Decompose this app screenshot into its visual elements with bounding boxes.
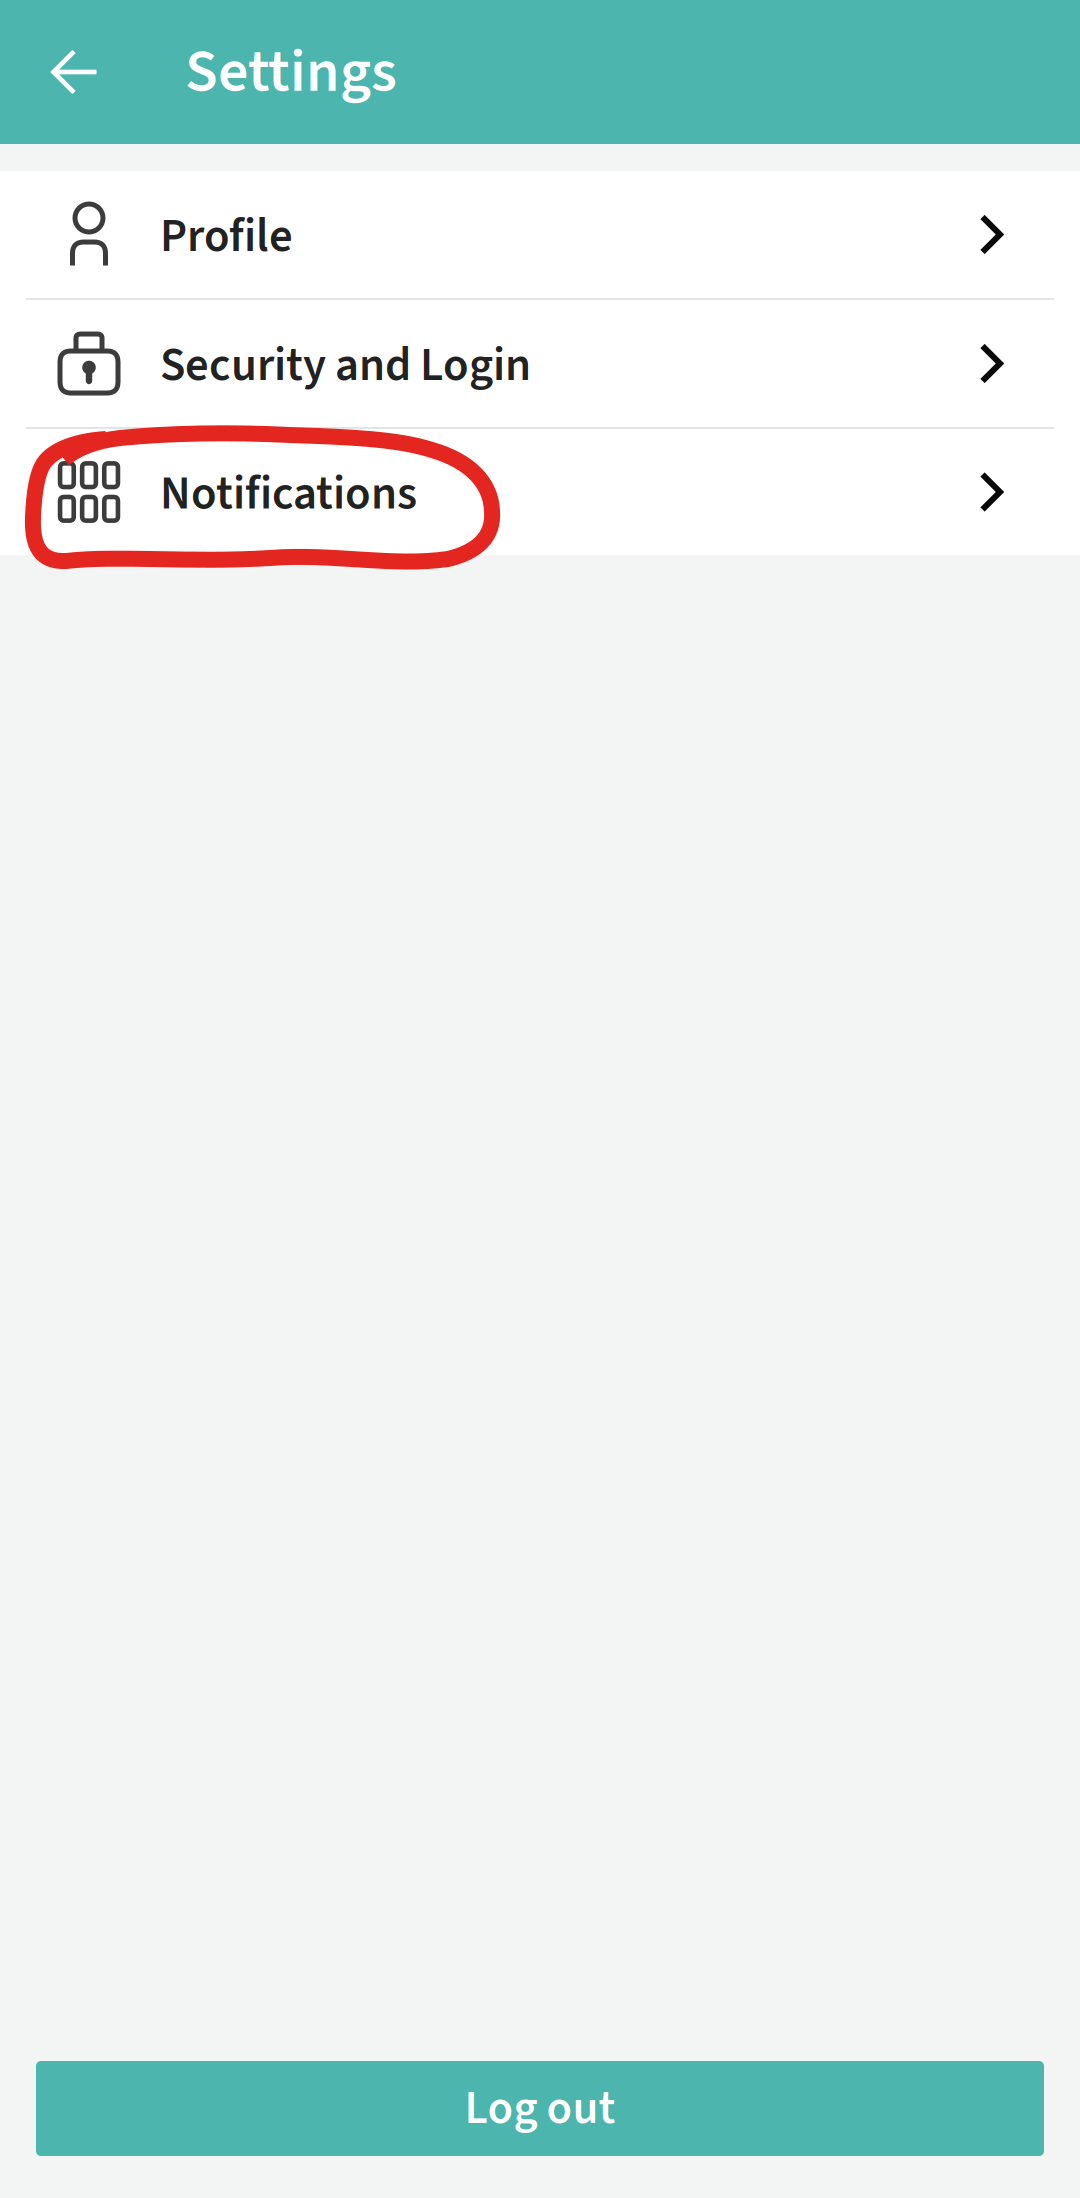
staticText: Settings <box>185 29 397 115</box>
button[interactable]: Back <box>29 25 121 119</box>
button[interactable]: Log out <box>36 2061 1044 2156</box>
staticText: Notifications <box>160 461 417 527</box>
button[interactable]: Notifications <box>0 429 1080 555</box>
button[interactable]: Profile <box>0 171 1080 298</box>
staticText: Log out <box>464 2075 615 2142</box>
button[interactable]: Security and Login <box>0 300 1080 427</box>
staticText: Security and Login <box>160 332 531 399</box>
staticText: Profile <box>160 203 293 270</box>
